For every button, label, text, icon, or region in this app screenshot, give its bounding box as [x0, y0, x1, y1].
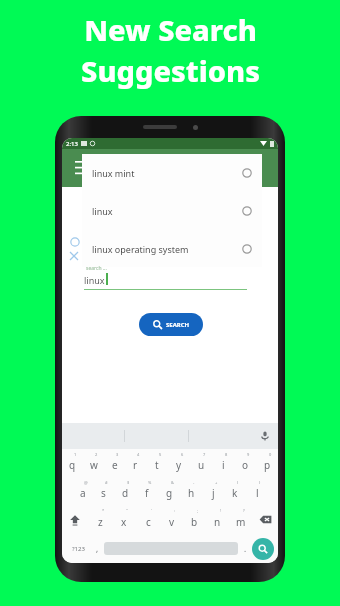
button[interactable]: $ — [114, 477, 136, 505]
staticText: 2 — [95, 452, 98, 457]
button[interactable]: Shift — [62, 505, 88, 534]
staticText: k — [232, 486, 238, 500]
button[interactable]: 7 — [190, 449, 212, 477]
staticText: ? — [243, 508, 245, 513]
button[interactable]: 3 — [104, 449, 125, 477]
button[interactable]: linux mint — [82, 154, 262, 192]
staticText: e — [112, 458, 118, 472]
staticText: ) — [259, 480, 261, 485]
staticText: y — [176, 458, 182, 472]
button[interactable]: ' — [136, 505, 160, 534]
button[interactable]: ) — [246, 477, 268, 505]
button[interactable]: ?123 — [66, 534, 90, 563]
button[interactable]: 9 — [234, 449, 256, 477]
staticText: n — [214, 515, 221, 529]
button[interactable]: . — [238, 534, 252, 563]
staticText: linux — [92, 205, 242, 217]
staticText: + — [215, 480, 218, 485]
button[interactable]: SEARCH — [139, 313, 203, 336]
button[interactable]: # — [93, 477, 114, 505]
staticText: 6 — [181, 452, 184, 457]
button[interactable]: Voice input — [252, 423, 278, 449]
staticText: % — [148, 480, 152, 485]
staticText: h — [188, 486, 195, 500]
button[interactable]: @ — [72, 477, 93, 505]
staticText: v — [169, 515, 175, 529]
button[interactable]: : — [160, 505, 183, 534]
staticText: l — [256, 486, 259, 500]
button[interactable]: " — [112, 505, 136, 534]
staticText: 3 — [116, 452, 119, 457]
staticText: . — [244, 543, 247, 554]
staticText: @ — [84, 480, 88, 485]
button[interactable]: ? — [229, 505, 252, 534]
button[interactable]: % — [136, 477, 158, 505]
button[interactable]: 0 — [256, 449, 278, 477]
staticText: i — [222, 458, 225, 472]
staticText: ( — [237, 480, 239, 485]
button[interactable]: * — [88, 505, 112, 534]
button[interactable]: ; — [183, 505, 206, 534]
staticText: g — [166, 486, 173, 500]
staticText: ! — [220, 508, 222, 513]
staticText: 4 — [137, 452, 140, 457]
staticText: c — [146, 515, 151, 529]
staticText: b — [191, 515, 198, 529]
button[interactable]: + — [202, 477, 224, 505]
button[interactable]: 8 — [212, 449, 234, 477]
staticText: d — [122, 486, 129, 500]
button[interactable]: ! — [206, 505, 229, 534]
staticText: ?123 — [72, 545, 85, 553]
button[interactable]: , — [90, 534, 104, 563]
staticText: 2:13 — [66, 140, 78, 148]
staticText: 7 — [203, 452, 206, 457]
staticText: Suggestions — [81, 51, 260, 90]
button[interactable]: Menu — [70, 156, 94, 180]
staticText: & — [171, 480, 174, 485]
staticText: , — [96, 543, 99, 554]
staticText: f — [145, 486, 149, 500]
staticText: r — [133, 458, 138, 472]
staticText: " — [126, 508, 128, 513]
staticText: p — [264, 458, 271, 472]
button[interactable]: 2 — [83, 449, 104, 477]
staticText: - — [193, 480, 195, 485]
staticText: linux — [84, 274, 105, 286]
staticText: o — [242, 458, 249, 472]
staticText: ' — [151, 508, 152, 513]
staticText: linux mint — [92, 167, 242, 179]
staticText: $ — [127, 480, 130, 485]
button[interactable]: - — [180, 477, 202, 505]
button[interactable]: 1 — [62, 449, 83, 477]
staticText: 8 — [225, 452, 228, 457]
staticText: a — [80, 486, 86, 500]
button[interactable]: 5 — [146, 449, 168, 477]
staticText: 5 — [159, 452, 162, 457]
button[interactable]: Backspace — [252, 505, 278, 534]
staticText: q — [69, 458, 76, 472]
staticText: * — [102, 508, 105, 513]
button[interactable]: Search — [252, 538, 274, 560]
staticText: 1 — [74, 452, 77, 457]
staticText: s — [101, 486, 106, 500]
staticText: ; — [197, 508, 199, 513]
staticText: New Search — [84, 10, 257, 49]
staticText: w — [90, 458, 98, 472]
staticText: j — [212, 486, 215, 500]
staticText: u — [198, 458, 205, 472]
button[interactable]: 4 — [125, 449, 146, 477]
staticText: m — [236, 515, 246, 529]
button[interactable]: 6 — [168, 449, 190, 477]
button[interactable]: linux operating system — [82, 230, 262, 267]
staticText: x — [121, 515, 127, 529]
button[interactable]: ( — [224, 477, 246, 505]
staticText: t — [155, 458, 159, 472]
staticText: # — [105, 480, 108, 485]
button[interactable]: linux — [82, 192, 262, 230]
button[interactable]: & — [158, 477, 180, 505]
staticText: linux operating system — [92, 243, 242, 255]
